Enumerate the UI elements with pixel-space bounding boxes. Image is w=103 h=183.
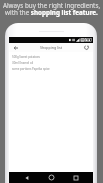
button[interactable]: 500g Sweet potatoes	[12, 54, 93, 60]
staticText: 30ml Enamel oil	[12, 61, 34, 65]
button[interactable]: some portions Paprika spice	[12, 66, 93, 72]
button[interactable]: Home	[44, 172, 58, 183]
button[interactable]: 30ml Enamel oil	[12, 60, 93, 66]
button[interactable]: Recent apps	[69, 172, 83, 183]
staticText: Shopping list	[40, 45, 62, 50]
button[interactable]: Back	[20, 172, 34, 183]
staticText: Always buy the right ingredients, with t…	[1, 1, 102, 17]
staticText: some portions Paprika spice	[12, 67, 50, 71]
button[interactable]: Navigate up	[11, 43, 20, 52]
button[interactable]: Refresh	[82, 43, 91, 52]
staticText: 500g Sweet potatoes	[12, 55, 40, 59]
